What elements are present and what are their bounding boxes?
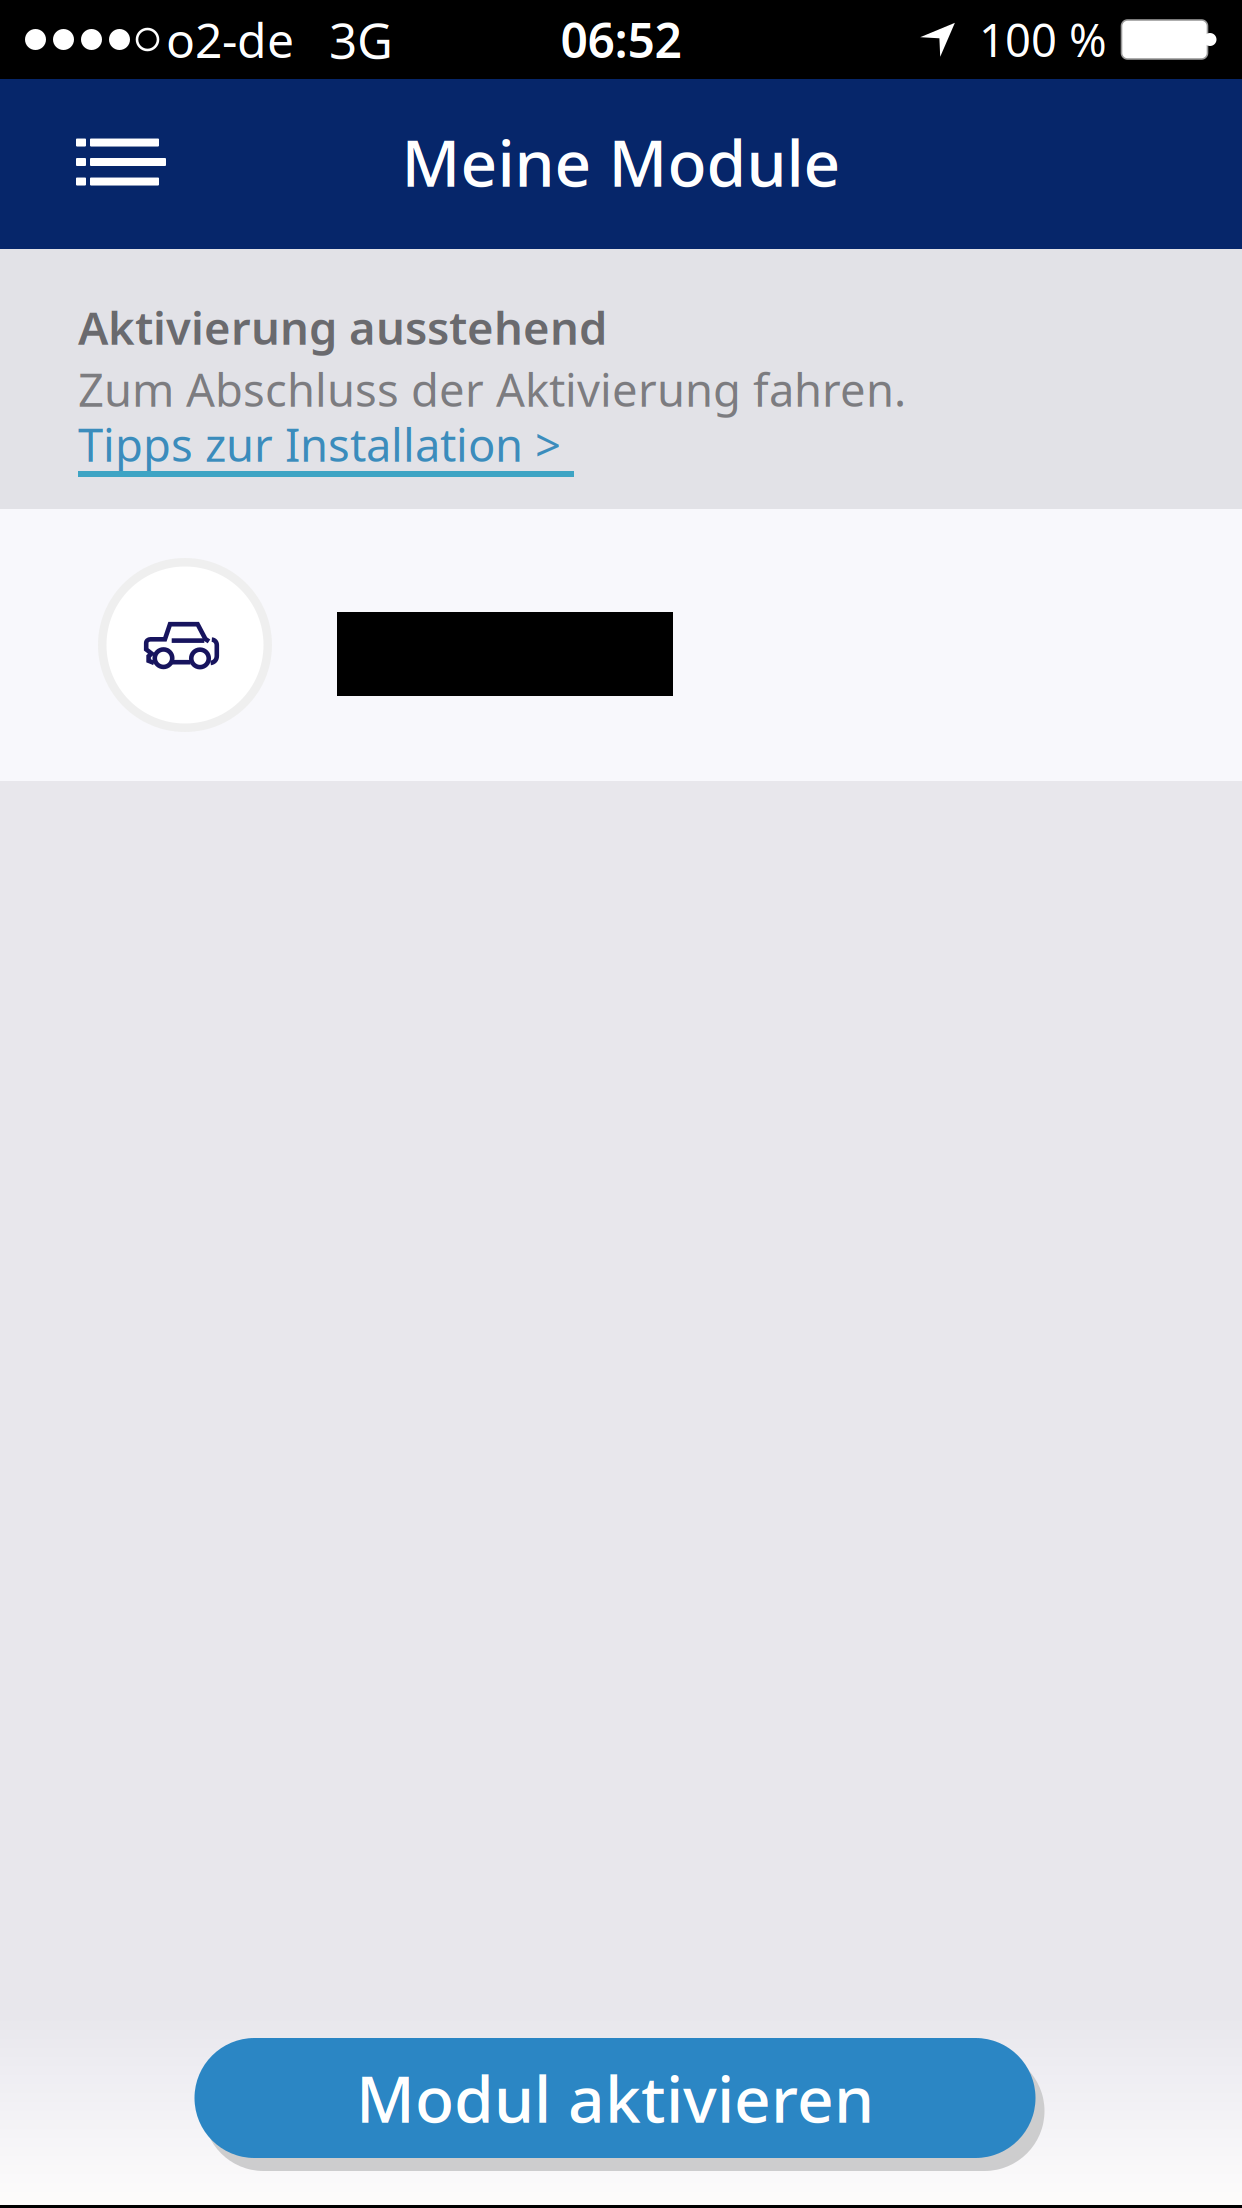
button[interactable]: Modul aktivieren	[194, 2038, 1035, 2158]
staticText: Tipps zur Installation >	[78, 414, 561, 474]
staticText: 3G	[329, 7, 393, 72]
staticText: 100 %	[979, 9, 1107, 70]
staticText: Meine Module	[401, 119, 840, 204]
staticText: Aktivierung ausstehend	[78, 297, 607, 357]
button[interactable]: Tipps zur Installation >	[78, 414, 574, 477]
staticText: Modul aktivieren	[356, 2055, 874, 2140]
button[interactable]	[0, 509, 1242, 781]
staticText: 06:52	[560, 8, 681, 71]
staticText: o2-de	[166, 8, 294, 71]
staticText: Zum Abschluss der Aktivierung fahren.	[78, 359, 906, 419]
button[interactable]: Menü	[46, 104, 196, 219]
